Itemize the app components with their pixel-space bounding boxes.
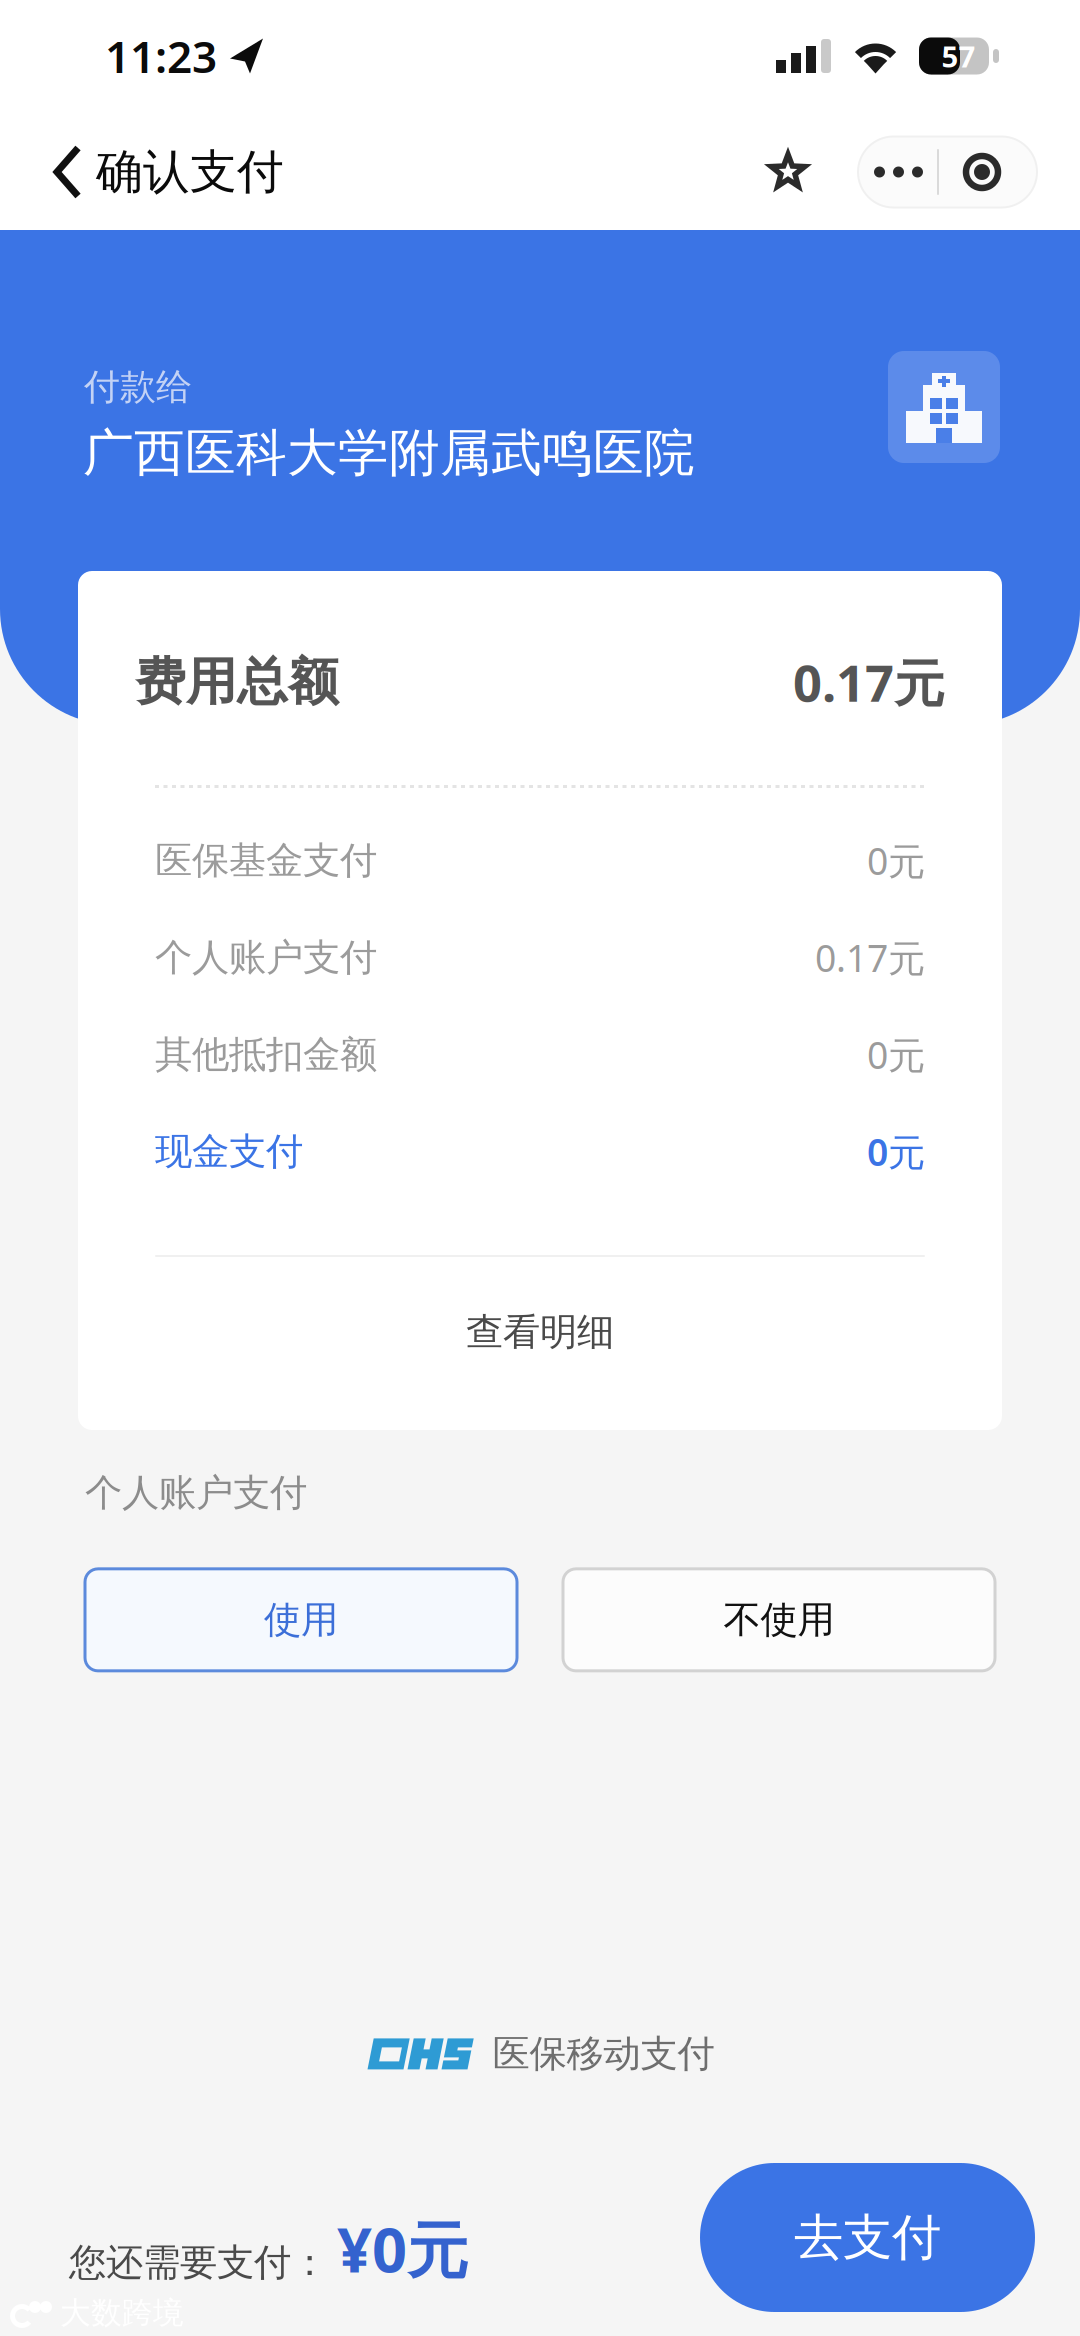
staticText: 广西医科大学附属武鸣医院 — [83, 422, 695, 484]
staticText: 57 — [941, 36, 975, 75]
staticText: 其他抵扣金额 — [155, 1032, 377, 1077]
staticText: 0元 — [867, 1030, 925, 1079]
staticText: 医保移动支付 — [492, 2031, 714, 2077]
button[interactable]: 使用 — [85, 1569, 517, 1671]
staticText: 大数跨境 — [60, 2294, 184, 2332]
staticText: 您还需要支付： — [69, 2240, 328, 2285]
staticText: 医保基金支付 — [155, 838, 377, 883]
button[interactable]: 不使用 — [563, 1569, 995, 1671]
staticText: 去支付 — [794, 2207, 941, 2268]
button[interactable]: More options — [858, 136, 1037, 207]
staticText: 个人账户支付 — [155, 935, 377, 980]
staticText: 0.17元 — [815, 933, 925, 982]
staticText: 付款给 — [84, 365, 192, 409]
staticText: 0元 — [867, 836, 925, 885]
staticText: ¥0元 — [337, 2208, 468, 2289]
button[interactable]: 去支付 — [700, 2163, 1035, 2312]
staticText: 0元 — [867, 1127, 925, 1176]
staticText: 0.17元 — [793, 648, 945, 716]
staticText: 使用 — [264, 1597, 338, 1643]
staticText: 查看明细 — [466, 1309, 614, 1355]
staticText: 11:23 — [105, 27, 217, 85]
staticText: 确认支付 — [96, 143, 284, 201]
button[interactable]: Back — [0, 122, 98, 222]
button[interactable]: Favorite — [742, 126, 834, 218]
staticText: 现金支付 — [155, 1129, 303, 1174]
staticText: 费用总额 — [135, 651, 339, 713]
staticText: 不使用 — [723, 1597, 834, 1643]
button[interactable]: 查看明细 — [155, 1257, 925, 1407]
staticText: 个人账户支付 — [85, 1470, 307, 1516]
